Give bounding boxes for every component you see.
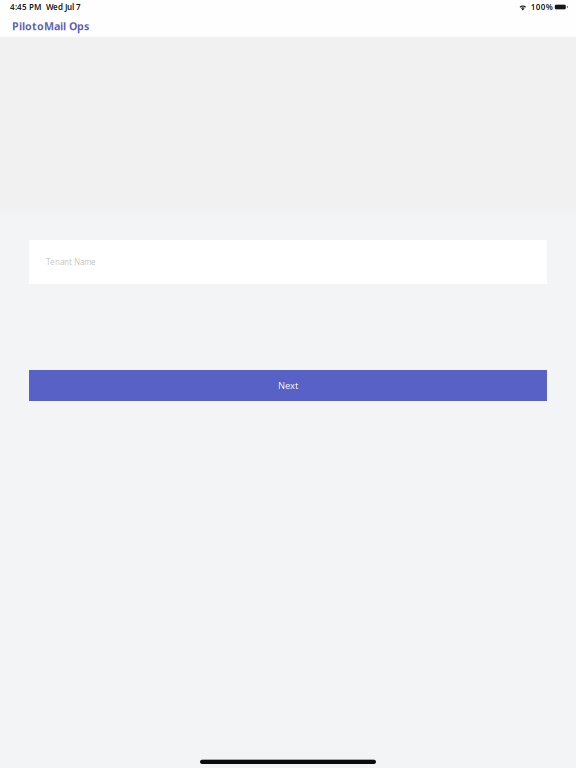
- staticText: Next: [278, 379, 298, 392]
- button[interactable]: PilotoMail Ops: [0, 16, 89, 36]
- staticText: 4:45 PM: [10, 2, 41, 12]
- staticText: PilotoMail Ops: [12, 19, 89, 33]
- button[interactable]: Next: [29, 370, 547, 401]
- staticText: Tenant Name: [46, 257, 96, 267]
- staticText: 100%: [531, 2, 553, 12]
- staticText: Wed Jul 7: [46, 2, 81, 12]
